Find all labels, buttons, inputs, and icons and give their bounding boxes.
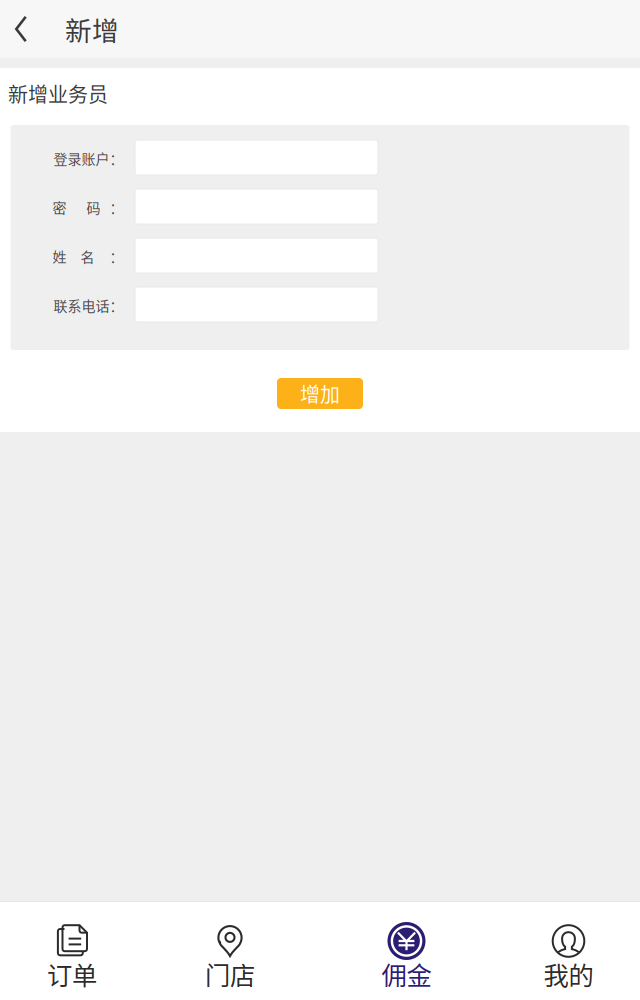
staticText: 新增业务员 <box>8 79 108 108</box>
staticText: 佣金 <box>381 956 431 992</box>
staticText: 订单 <box>47 956 97 992</box>
button[interactable]: 增加 <box>277 378 363 409</box>
button[interactable]: 订单 <box>0 902 144 1000</box>
button[interactable]: Back <box>0 0 65 58</box>
button[interactable]: 佣金 <box>316 902 497 1000</box>
staticText: 新增 <box>65 10 119 48</box>
staticText: 我的 <box>543 956 593 992</box>
button[interactable]: 我的 <box>497 902 640 1000</box>
button[interactable]: 门店 <box>144 902 316 1000</box>
staticText: 姓 名 ： <box>52 246 123 266</box>
staticText: 增加 <box>300 379 340 408</box>
staticText: 门店 <box>205 956 255 992</box>
staticText: 密 码 ： <box>52 197 123 217</box>
staticText: 登录账户： <box>53 148 123 168</box>
staticText: 联系电话： <box>53 295 123 315</box>
